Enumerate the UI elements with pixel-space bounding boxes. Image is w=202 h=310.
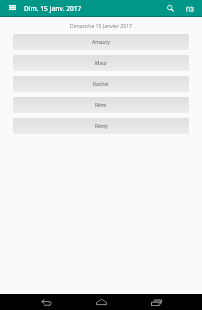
button[interactable]: Amaury bbox=[13, 34, 189, 50]
button[interactable]: Rémy bbox=[13, 118, 189, 134]
staticText: Dimanche 15 Janvier 2017 bbox=[0, 23, 202, 30]
button[interactable]: Menu bbox=[5, 0, 20, 17]
button[interactable]: Rachel bbox=[13, 76, 189, 92]
button[interactable]: Calendar bbox=[182, 0, 198, 17]
button[interactable]: Search bbox=[161, 0, 179, 17]
staticText: Dim. 15 Janv. 2017 bbox=[24, 4, 82, 13]
staticText: Rachel bbox=[93, 81, 109, 88]
button[interactable]: Rémi bbox=[13, 97, 189, 113]
staticText: Rémy bbox=[95, 123, 108, 130]
staticText: Maur bbox=[95, 60, 108, 67]
staticText: Amaury bbox=[92, 39, 110, 46]
button[interactable]: Recents bbox=[138, 294, 174, 310]
button[interactable]: Back bbox=[28, 294, 64, 310]
staticText: Rémi bbox=[95, 102, 107, 109]
button[interactable]: Maur bbox=[13, 55, 189, 71]
button[interactable]: Home bbox=[83, 294, 119, 310]
